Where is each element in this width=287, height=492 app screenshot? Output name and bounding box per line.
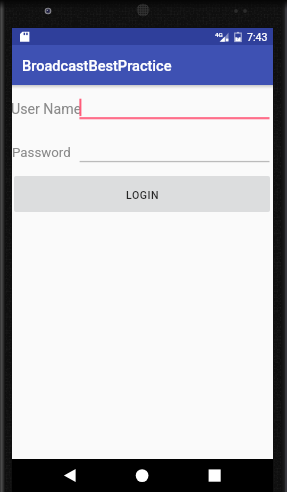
staticText: BroadcastBestPractice	[22, 57, 172, 74]
button[interactable]: LOGIN	[14, 176, 270, 212]
staticText: LOGIN	[126, 189, 160, 201]
staticText: 7:43	[247, 31, 268, 43]
button[interactable]: Home	[118, 459, 166, 492]
staticText: User Name	[11, 101, 82, 118]
button[interactable]: Back	[46, 459, 94, 492]
button[interactable]: Recent apps	[190, 459, 238, 492]
staticText: Password	[12, 145, 71, 161]
staticText: 4G	[215, 31, 223, 38]
